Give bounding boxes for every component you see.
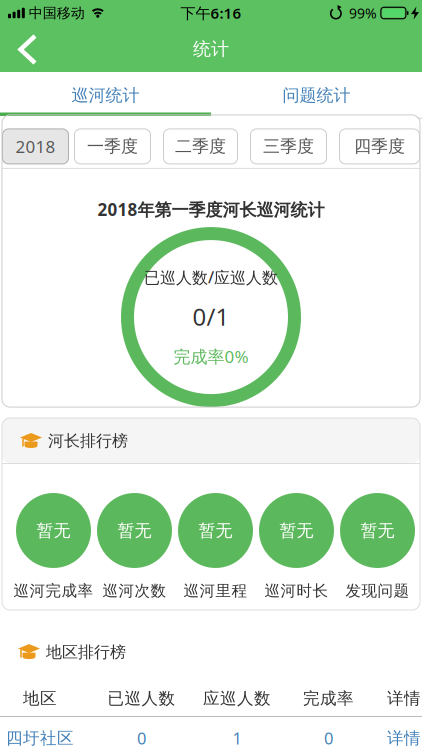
staticText: 统计 bbox=[193, 38, 229, 60]
staticText: 地区 bbox=[23, 688, 57, 709]
button[interactable]: 三季度 bbox=[250, 129, 326, 164]
button[interactable]: 四季度 bbox=[339, 129, 419, 164]
staticText: 2018年第一季度河长巡河统计 bbox=[97, 198, 324, 221]
button[interactable]: 问题统计 bbox=[211, 72, 422, 112]
staticText: 完成率 bbox=[303, 688, 354, 709]
staticText: 暂无 bbox=[198, 520, 232, 541]
staticText: 中国移动 bbox=[29, 4, 85, 22]
staticText: 1 bbox=[232, 727, 241, 749]
staticText: 详情 bbox=[387, 688, 421, 709]
staticText: 一季度 bbox=[87, 136, 138, 157]
staticText: 发现问题 bbox=[345, 581, 409, 600]
staticText: 巡河里程 bbox=[183, 581, 247, 600]
staticText: 地区排行榜 bbox=[46, 642, 126, 662]
staticText: 三季度 bbox=[263, 136, 314, 157]
staticText: 已巡人数 bbox=[107, 688, 175, 709]
button[interactable]: 2018 bbox=[2, 129, 68, 164]
staticText: 问题统计 bbox=[282, 84, 350, 106]
staticText: 暂无 bbox=[36, 520, 70, 541]
staticText: 0 bbox=[324, 727, 333, 749]
staticText: 99% bbox=[349, 3, 377, 23]
staticText: 四圩社区 bbox=[6, 728, 74, 749]
button[interactable]: 四圩社区 bbox=[0, 727, 422, 749]
staticText: 应巡人数 bbox=[203, 688, 271, 709]
button[interactable]: 巡河统计 bbox=[0, 72, 211, 112]
button[interactable]: Back bbox=[0, 27, 44, 71]
staticText: 0/1 bbox=[192, 300, 229, 333]
staticText: 详情 bbox=[387, 728, 421, 749]
button[interactable]: 一季度 bbox=[74, 129, 150, 164]
staticText: 暂无 bbox=[279, 520, 313, 541]
staticText: 暂无 bbox=[117, 520, 151, 541]
staticText: 巡河统计 bbox=[71, 84, 139, 106]
staticText: 二季度 bbox=[175, 136, 226, 157]
staticText: 四季度 bbox=[354, 136, 405, 157]
staticText: 完成率0% bbox=[173, 345, 248, 368]
button[interactable]: 二季度 bbox=[163, 129, 237, 164]
staticText: 巡河时长 bbox=[264, 581, 328, 600]
staticText: 巡河次数 bbox=[102, 581, 166, 600]
staticText: 下午6:16 bbox=[180, 3, 241, 23]
staticText: 已巡人数/应巡人数 bbox=[144, 266, 278, 288]
staticText: 河长排行榜 bbox=[48, 431, 128, 451]
staticText: 2018 bbox=[15, 135, 55, 158]
staticText: 0 bbox=[137, 727, 146, 749]
staticText: 巡河完成率 bbox=[13, 581, 93, 600]
staticText: 暂无 bbox=[360, 520, 394, 541]
